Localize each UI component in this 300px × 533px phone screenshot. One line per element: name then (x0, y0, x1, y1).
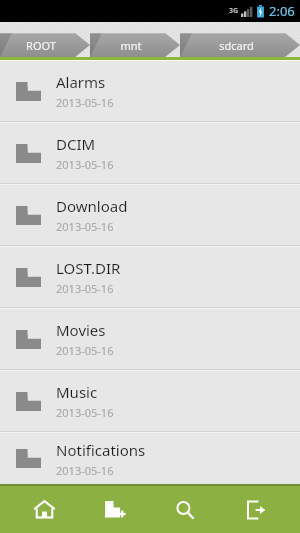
button[interactable]: Alarms (0, 61, 300, 121)
staticText: Alarms (56, 72, 106, 92)
staticText: Notifications (56, 440, 146, 460)
staticText: 2013-05-16 (56, 219, 114, 234)
staticText: 2013-05-16 (56, 405, 114, 420)
button[interactable]: Exit (230, 486, 282, 533)
staticText: DCIM (56, 134, 96, 154)
button[interactable]: sdcard (180, 33, 300, 57)
staticText: sdcard (219, 38, 254, 53)
staticText: Music (56, 382, 98, 402)
staticText: 2:06 (269, 2, 295, 20)
staticText: 2013-05-16 (56, 95, 114, 110)
button[interactable]: LOST.DIR (0, 247, 300, 307)
staticText: LOST.DIR (56, 258, 121, 278)
button[interactable]: Notifications (0, 433, 300, 484)
button[interactable]: New folder (89, 486, 141, 533)
staticText: Download (56, 196, 128, 216)
button[interactable]: Movies (0, 309, 300, 369)
staticText: 2013-05-16 (56, 343, 114, 358)
staticText: mnt (120, 38, 142, 53)
staticText: 2013-05-16 (56, 157, 114, 172)
staticText: 2013-05-16 (56, 281, 114, 296)
button[interactable]: Search (159, 486, 211, 533)
button[interactable]: Download (0, 185, 300, 245)
staticText: 3G (229, 6, 239, 16)
button[interactable]: mnt (90, 33, 180, 57)
button[interactable]: ROOT (0, 33, 90, 57)
staticText: Movies (56, 320, 106, 340)
button[interactable]: Music (0, 371, 300, 431)
button[interactable]: Home (18, 486, 70, 533)
staticText: 2013-05-16 (56, 463, 114, 478)
button[interactable]: DCIM (0, 123, 300, 183)
staticText: ROOT (26, 38, 56, 53)
